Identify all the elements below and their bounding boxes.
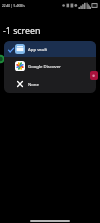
staticText: -1 screen	[3, 25, 41, 37]
staticText: 22:40 | 5.4KB/s	[2, 4, 25, 8]
staticText: None	[28, 81, 39, 87]
staticText: Google Discover	[28, 63, 61, 69]
button[interactable]: None	[4, 75, 96, 93]
button[interactable]: App vault	[4, 41, 96, 57]
staticText: App vault	[28, 46, 48, 52]
button[interactable]: Google Discover	[4, 57, 96, 75]
